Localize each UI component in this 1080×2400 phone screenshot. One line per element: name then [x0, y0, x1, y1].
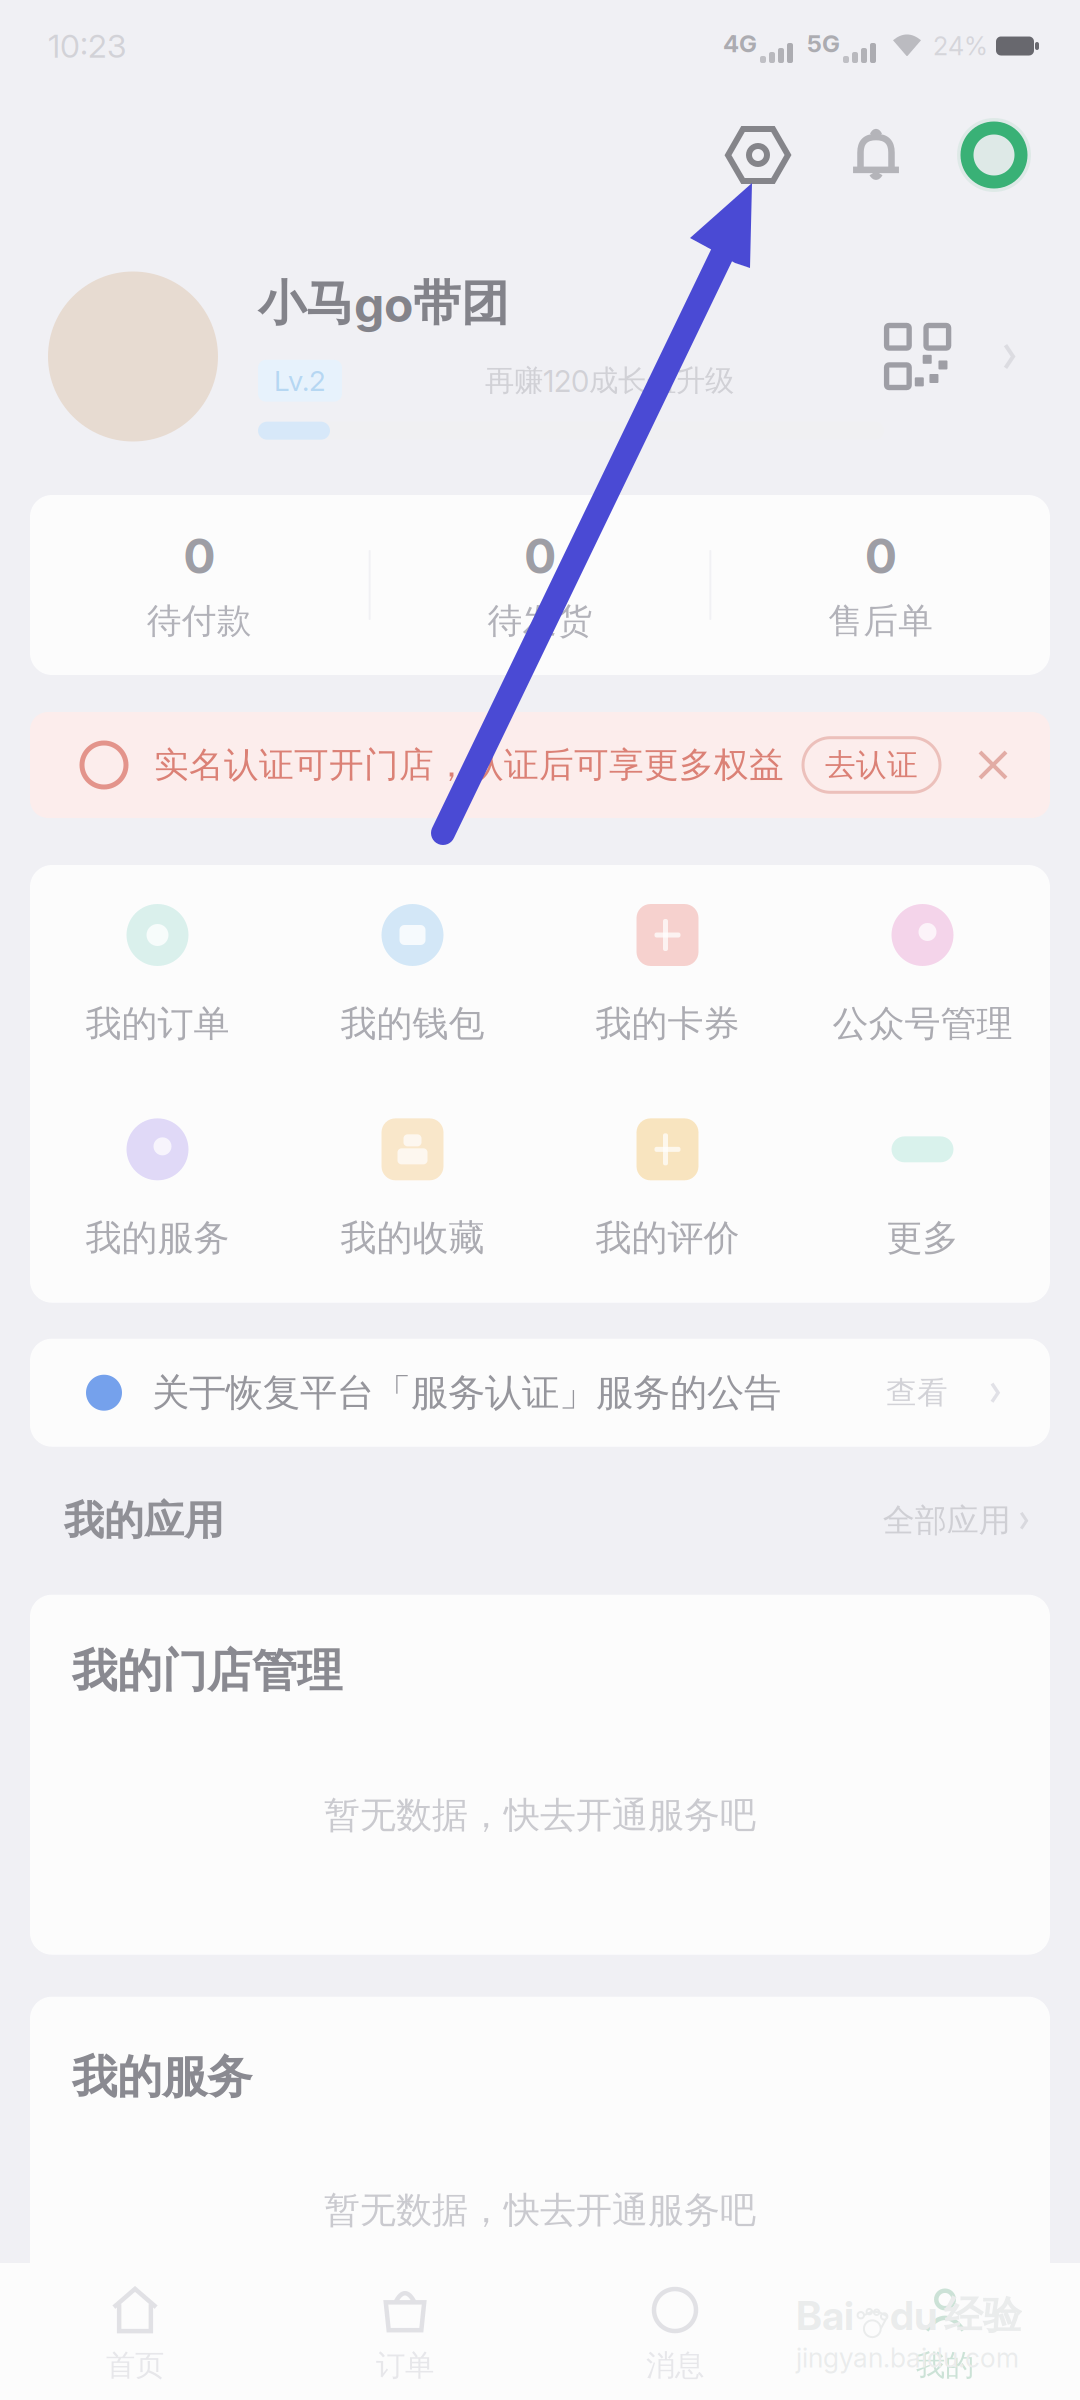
staticText: 经验 — [944, 2291, 1022, 2340]
button[interactable]: 我的收藏 — [285, 1116, 540, 1261]
staticText: 售后单 — [828, 599, 933, 643]
staticText: 我的 — [916, 2347, 974, 2384]
staticText: Lv.2 — [274, 364, 326, 398]
button[interactable]: 更多 — [795, 1116, 1050, 1261]
button[interactable]: 我的 — [810, 2285, 1080, 2384]
staticText: 24% — [933, 31, 988, 61]
button[interactable]: 我的二维码 My QR code — [887, 218, 1080, 495]
staticText: 小马go带团 — [258, 273, 509, 334]
button[interactable]: 我的评价 — [540, 1116, 795, 1261]
staticText: 全部应用 — [883, 1500, 1011, 1541]
staticText: 公众号管理 — [832, 1001, 1012, 1046]
button[interactable]: 0 — [711, 527, 1050, 643]
button[interactable]: 实名认证可开门店，认证后可享更多权益 — [0, 675, 1080, 818]
staticText: 关于恢复平台「服务认证」服务的公告 — [152, 1369, 781, 1416]
staticText: 查看 — [886, 1373, 948, 1412]
button[interactable]: 我的卡券 — [540, 902, 795, 1046]
staticText: 我的收藏 — [340, 1215, 484, 1261]
staticText: 暂无数据，快去开通服务吧 — [324, 1793, 756, 1838]
button[interactable]: 设置 Settings — [712, 109, 804, 201]
staticText: 再赚120成长值升级 — [485, 362, 734, 399]
staticText: 我的评价 — [595, 1215, 739, 1261]
staticText: 我的钱包 — [340, 1001, 484, 1046]
staticText: 0 — [865, 527, 897, 585]
staticText: 待发货 — [487, 599, 592, 643]
staticText: 我的应用 — [64, 1495, 224, 1546]
staticText: 暂无数据，快去开通服务吧 — [324, 2188, 756, 2233]
staticText: 我的门店管理 — [72, 1643, 342, 1700]
staticText: 我的订单 — [85, 1001, 229, 1046]
button[interactable]: 我的订单 — [30, 902, 285, 1046]
staticText: 4G — [723, 29, 757, 58]
staticText: 更多 — [886, 1215, 958, 1261]
button[interactable]: 我的钱包 — [285, 902, 540, 1046]
button[interactable]: 订单 — [270, 2285, 540, 2384]
staticText: jingyan.baidu.com — [796, 2342, 1019, 2374]
staticText: 实名认证可开门店，认证后可享更多权益 — [154, 743, 784, 787]
button[interactable]: 消息 — [540, 2285, 810, 2384]
staticText: 我的服务 — [85, 1215, 229, 1261]
button[interactable]: 关于恢复平台「服务认证」服务的公告 — [0, 1303, 1080, 1447]
button[interactable]: 消息 Notifications — [830, 109, 922, 201]
staticText: 首页 — [106, 2347, 164, 2384]
button[interactable]: 客服 Service — [948, 109, 1040, 201]
button[interactable]: 我的服务 — [30, 1116, 285, 1261]
staticText: 0 — [524, 527, 556, 585]
button[interactable]: 公众号管理 — [795, 902, 1050, 1046]
button[interactable]: 小马go带团 — [0, 218, 884, 495]
staticText: du — [890, 2291, 938, 2340]
button[interactable]: 首页 — [0, 2285, 270, 2384]
staticText: 订单 — [376, 2347, 434, 2384]
staticText: 0 — [183, 527, 215, 585]
button[interactable]: 全部应用 — [883, 1500, 1030, 1541]
staticText: 5G — [807, 29, 840, 58]
staticText: 我的服务 — [72, 2049, 252, 2106]
button[interactable]: 0 — [371, 527, 709, 643]
staticText: 我的卡券 — [595, 1001, 739, 1046]
staticText: 消息 — [646, 2347, 704, 2384]
staticText: 待付款 — [147, 599, 252, 643]
button[interactable]: 0 — [30, 527, 369, 643]
staticText: Bai — [796, 2291, 854, 2340]
staticText: 10:23 — [48, 27, 126, 65]
staticText: 去认证 — [825, 746, 918, 784]
